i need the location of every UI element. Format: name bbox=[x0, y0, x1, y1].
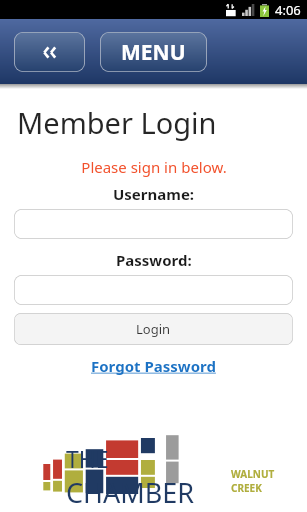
staticText: Login bbox=[136, 320, 171, 338]
staticText: Username: bbox=[113, 184, 195, 204]
staticText: CHAMBER bbox=[66, 474, 195, 511]
staticText: Member Login bbox=[17, 103, 217, 142]
staticText: MENU bbox=[121, 38, 186, 67]
button[interactable] bbox=[14, 209, 293, 239]
staticText: CREEK bbox=[231, 481, 262, 495]
staticText: Please sign in below. bbox=[81, 157, 227, 177]
button[interactable]: Forgot Password bbox=[89, 354, 218, 378]
staticText: WALNUT bbox=[231, 467, 275, 481]
staticText: 4:06 bbox=[275, 1, 301, 19]
staticText: Forgot Password bbox=[91, 356, 216, 376]
button[interactable]: MENU bbox=[100, 32, 207, 72]
staticText: THE bbox=[66, 443, 109, 474]
button[interactable]: Back bbox=[14, 32, 85, 72]
button[interactable]: Login bbox=[14, 313, 293, 345]
button[interactable] bbox=[14, 275, 293, 305]
staticText: Password: bbox=[116, 250, 192, 270]
